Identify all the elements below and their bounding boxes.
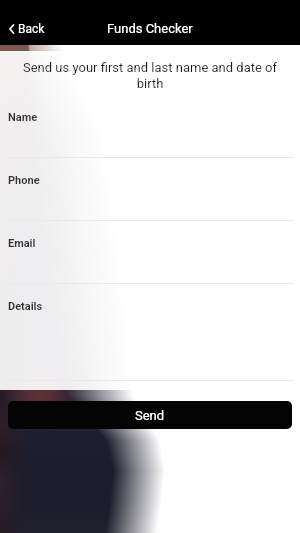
button[interactable]: Back bbox=[0, 18, 54, 40]
staticText: Back bbox=[18, 22, 45, 36]
button[interactable]: Phone bbox=[0, 158, 300, 221]
button[interactable]: Email bbox=[0, 221, 300, 284]
button[interactable]: Name bbox=[0, 95, 300, 158]
staticText: Name bbox=[8, 111, 38, 124]
button[interactable]: Send bbox=[8, 401, 292, 429]
staticText: Send bbox=[135, 408, 165, 423]
staticText: Funds Checker bbox=[107, 21, 193, 36]
staticText: Email bbox=[8, 237, 36, 250]
staticText: Phone bbox=[8, 174, 40, 187]
button[interactable]: Details bbox=[0, 284, 300, 381]
staticText: Send us your first and last name and dat… bbox=[11, 60, 289, 91]
staticText: Details bbox=[8, 300, 43, 313]
